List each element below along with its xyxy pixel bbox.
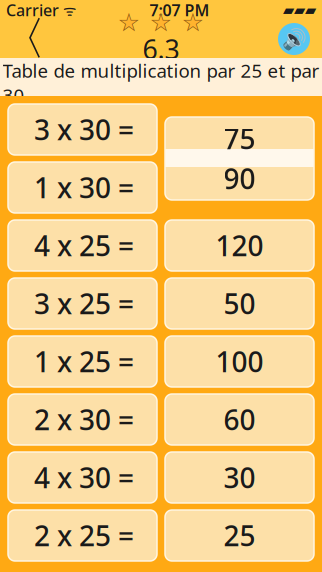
- staticText: Table de multiplication par 25 et par 30: [2, 58, 319, 96]
- button[interactable]: 50: [165, 278, 314, 329]
- button[interactable]: 25: [165, 510, 314, 561]
- staticText: Carrier: [6, 0, 59, 21]
- staticText: 30: [223, 459, 255, 496]
- staticText: 🔊: [281, 28, 306, 50]
- staticText: 3 x 25 =: [34, 285, 134, 322]
- staticText: 75: [223, 120, 255, 157]
- staticText: ▰▰▰: [283, 2, 316, 18]
- staticText: 〈: [0, 11, 45, 67]
- button[interactable]: 3 x 30 =: [8, 104, 157, 155]
- staticText: 4 x 25 =: [34, 227, 134, 264]
- button[interactable]: 3 x 25 =: [8, 278, 157, 329]
- staticText: 120: [215, 227, 263, 264]
- staticText: ☆: [149, 8, 172, 37]
- staticText: 6.3: [142, 31, 179, 67]
- staticText: 50: [223, 285, 255, 322]
- staticText: 100: [215, 343, 263, 380]
- staticText: ☆: [117, 8, 140, 37]
- button[interactable]: 4 x 25 =: [8, 220, 157, 271]
- staticText: 2 x 30 =: [34, 401, 134, 438]
- staticText: ᯤ: [59, 0, 76, 20]
- staticText: ☆: [181, 8, 204, 37]
- staticText: 3 x 30 =: [34, 111, 134, 148]
- button[interactable]: 4 x 30 =: [8, 452, 157, 503]
- staticText: 7:07 PM: [149, 0, 209, 21]
- staticText: 90: [223, 160, 255, 197]
- button[interactable]: Back: [0, 19, 46, 59]
- staticText: ★: [149, 8, 172, 37]
- button[interactable]: 60: [165, 394, 314, 445]
- button[interactable]: Sound: [278, 23, 310, 55]
- staticText: ★: [117, 8, 140, 37]
- button[interactable]: 75: [165, 117, 314, 200]
- button[interactable]: 1 x 30 =: [8, 162, 157, 213]
- button[interactable]: 30: [165, 452, 314, 503]
- staticText: 2 x 25 =: [34, 517, 134, 554]
- button[interactable]: 1 x 25 =: [8, 336, 157, 387]
- button[interactable]: 2 x 30 =: [8, 394, 157, 445]
- button[interactable]: 120: [165, 220, 314, 271]
- staticText: 4 x 30 =: [34, 459, 134, 496]
- staticText: 25: [223, 517, 255, 554]
- staticText: ★: [181, 8, 204, 37]
- button[interactable]: 2 x 25 =: [8, 510, 157, 561]
- staticText: 1 x 30 =: [34, 169, 134, 206]
- button[interactable]: 100: [165, 336, 314, 387]
- staticText: 1 x 25 =: [34, 343, 134, 380]
- staticText: 60: [223, 401, 255, 438]
